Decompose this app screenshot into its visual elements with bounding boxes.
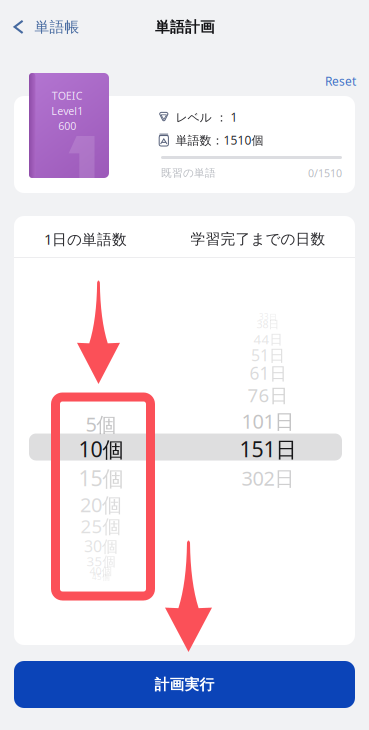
staticText: 35個 [86, 552, 115, 570]
staticText: 0/1510 [308, 166, 342, 180]
staticText: 38日 [256, 317, 279, 331]
staticText: TOEIC [52, 88, 83, 103]
staticText: 1日の単語数 [44, 229, 127, 249]
button[interactable]: 計画実行 [14, 661, 355, 708]
staticText: 学習完了までの日数 [190, 230, 325, 248]
staticText: 15個 [78, 464, 123, 492]
staticText: 計画実行 [154, 675, 214, 693]
staticText: 20個 [80, 491, 122, 518]
staticText: 45個 [92, 572, 110, 582]
staticText: 既習の単語 [161, 166, 216, 179]
staticText: 61日 [249, 361, 286, 384]
staticText: 30個 [84, 535, 118, 557]
staticText: Level1 [51, 104, 83, 118]
staticText: 40個 [89, 564, 112, 578]
staticText: 単語帳 [34, 18, 79, 36]
button[interactable]: 単語帳 [0, 10, 89, 44]
staticText: 600 [58, 119, 76, 133]
staticText: 51日 [251, 344, 285, 366]
staticText: 単語計画 [155, 18, 215, 36]
staticText: 302日 [241, 465, 294, 491]
staticText: 単語数：1510個 [176, 132, 264, 148]
staticText: 44日 [253, 330, 282, 348]
staticText: 151日 [239, 435, 296, 463]
staticText: 10個 [78, 435, 123, 463]
staticText: レベル ： 1 [176, 109, 238, 125]
staticText: 5個 [85, 411, 116, 437]
staticText: 101日 [241, 408, 294, 434]
staticText: 25個 [80, 514, 121, 538]
staticText: 33日 [259, 312, 277, 322]
button[interactable]: Reset [316, 72, 356, 90]
staticText: Reset [325, 73, 356, 89]
staticText: 76日 [247, 383, 288, 407]
